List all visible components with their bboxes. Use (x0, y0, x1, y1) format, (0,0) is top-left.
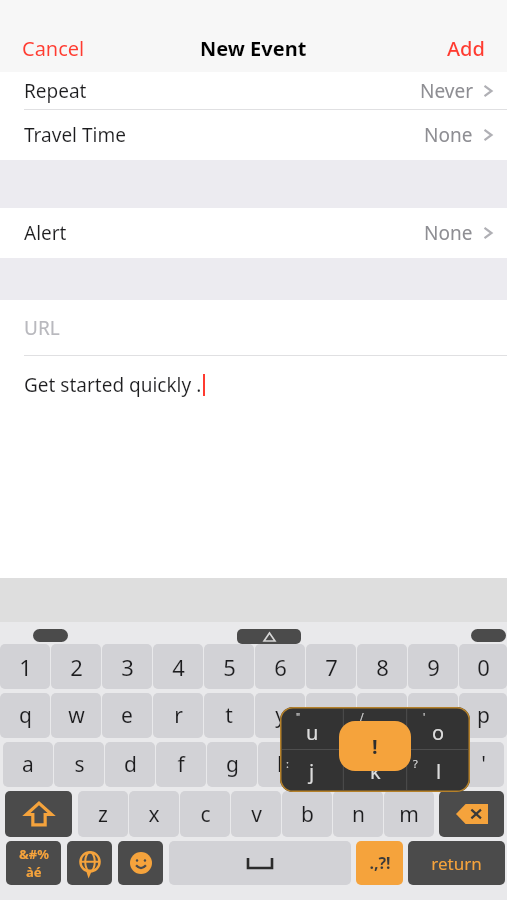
staticText: w (68, 701, 85, 730)
staticText: o (432, 719, 445, 746)
button[interactable]: 4 (153, 644, 203, 689)
button[interactable]: e (102, 693, 152, 738)
staticText: 1 (19, 652, 32, 682)
button[interactable]: 0 (459, 644, 507, 689)
button[interactable]: &#% (6, 841, 61, 885)
staticText: h (277, 750, 290, 779)
button[interactable]: Cancel (14, 29, 93, 68)
button[interactable]: u (306, 693, 356, 738)
staticText: 3 (121, 652, 134, 682)
button[interactable]: URL (0, 300, 507, 356)
staticText: None (424, 220, 473, 246)
button[interactable]: g (207, 742, 257, 787)
staticText: New Event (200, 35, 307, 62)
staticText: Travel Time (24, 122, 126, 148)
button[interactable]: 8 (357, 644, 407, 689)
staticText: y (275, 701, 286, 730)
staticText: n (352, 800, 365, 829)
staticText: URL (24, 315, 60, 341)
button[interactable]: c (180, 791, 230, 837)
button[interactable]: ' (462, 742, 504, 787)
button[interactable]: v (231, 791, 281, 837)
button[interactable]: 9 (408, 644, 458, 689)
button[interactable]: l (411, 742, 461, 787)
button[interactable]: Switch keyboard (67, 841, 112, 885)
staticText: o (427, 701, 440, 730)
button[interactable]: j (309, 742, 359, 787)
staticText: a (22, 750, 34, 779)
button[interactable]: return (408, 841, 505, 885)
button[interactable]: o (408, 693, 458, 738)
button[interactable]: " (280, 707, 470, 792)
button[interactable]: ! (339, 721, 411, 771)
staticText: 7 (325, 652, 338, 682)
button[interactable]: y (255, 693, 305, 738)
button[interactable]: Repeat (0, 72, 507, 110)
staticText: 4 (172, 652, 185, 682)
staticText: i (379, 701, 385, 730)
button[interactable]: p (459, 693, 507, 738)
staticText: ; (350, 756, 353, 771)
staticText: ! (372, 733, 378, 760)
staticText: return (431, 852, 482, 875)
button[interactable]: Travel Time (0, 110, 507, 160)
button[interactable]: x (129, 791, 179, 837)
button[interactable]: 7 (306, 644, 356, 689)
button[interactable]: m (384, 791, 434, 837)
staticText: Repeat (24, 78, 87, 104)
button[interactable]: Backspace (439, 791, 504, 837)
button[interactable]: n (333, 791, 383, 837)
button[interactable]: w (51, 693, 101, 738)
staticText: m (399, 800, 419, 829)
button[interactable]: Get started quickly . (0, 356, 507, 578)
staticText: e (121, 701, 133, 730)
staticText: àé (26, 863, 42, 881)
button[interactable]: b (282, 791, 332, 837)
button[interactable]: r (153, 693, 203, 738)
staticText: l (433, 750, 439, 779)
button[interactable]: z (78, 791, 128, 837)
staticText: 8 (376, 652, 389, 682)
staticText: k (370, 758, 381, 785)
staticText: g (226, 750, 239, 779)
button[interactable]: Shift (5, 791, 72, 837)
button[interactable]: q (0, 693, 50, 738)
button[interactable]: d (105, 742, 155, 787)
button[interactable]: 6 (255, 644, 305, 689)
staticText: 2 (70, 652, 83, 682)
staticText: p (477, 701, 490, 730)
staticText: Never (420, 78, 473, 104)
staticText: &#% (19, 845, 49, 863)
staticText: s (74, 750, 85, 779)
button[interactable]: Space (169, 841, 351, 885)
button[interactable]: a (3, 742, 53, 787)
staticText: Cancel (22, 35, 85, 62)
button[interactable]: Emoji (118, 841, 163, 885)
staticText: c (200, 800, 211, 829)
button[interactable]: .,?! (356, 841, 403, 885)
staticText: None (424, 122, 473, 148)
staticText: z (98, 800, 108, 829)
button[interactable]: h (258, 742, 308, 787)
button[interactable]: 5 (204, 644, 254, 689)
staticText: q (19, 701, 32, 730)
staticText: ? (413, 756, 418, 771)
button[interactable]: 3 (102, 644, 152, 689)
button[interactable]: t (204, 693, 254, 738)
button[interactable]: s (54, 742, 104, 787)
staticText: r (174, 701, 183, 730)
staticText: x (148, 800, 160, 829)
button[interactable]: 1 (0, 644, 50, 689)
button[interactable]: f (156, 742, 206, 787)
staticText: j (309, 758, 315, 785)
button[interactable]: Alert (0, 208, 507, 258)
button[interactable]: Add (439, 29, 493, 68)
staticText: .,?! (369, 852, 391, 874)
staticText: : (286, 756, 289, 771)
button[interactable]: k (360, 742, 410, 787)
staticText: ' (423, 710, 426, 724)
staticText: 0 (477, 652, 490, 682)
staticText: u (306, 719, 319, 746)
button[interactable]: i (357, 693, 407, 738)
button[interactable]: 2 (51, 644, 101, 689)
